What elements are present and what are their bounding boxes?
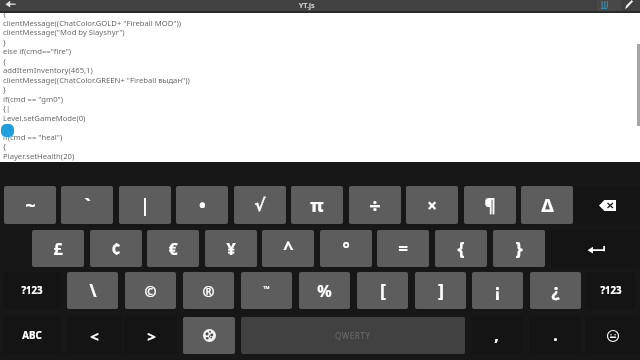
staticText: € xyxy=(168,238,178,260)
button[interactable]: × xyxy=(406,186,458,224)
button[interactable]: Enter xyxy=(551,230,640,267)
button[interactable]: \ xyxy=(67,272,118,309)
staticText: clientMessage((ChatColor.GOLD+ "Fireball… xyxy=(3,18,182,28)
staticText: Level.setGameMode(0) xyxy=(3,113,86,123)
button[interactable]: ~ xyxy=(4,186,56,224)
staticText: {| xyxy=(3,103,11,113)
staticText: ¶ xyxy=(484,194,496,217)
button[interactable]: √ xyxy=(234,186,286,224)
button[interactable]: } xyxy=(493,230,545,267)
staticText: { xyxy=(3,8,6,18)
staticText: < xyxy=(90,326,99,346)
staticText: if(cmd == "heal") xyxy=(3,132,63,142)
staticText: ABC xyxy=(22,329,42,342)
button[interactable]: • xyxy=(176,186,228,224)
button[interactable]: ™ xyxy=(241,272,292,309)
staticText: π xyxy=(310,193,324,218)
button[interactable]: ¶ xyxy=(464,186,516,224)
staticText: clientMessage((ChatColor.GREEN+ "Firebal… xyxy=(3,75,190,85)
button[interactable]: ?123 xyxy=(586,272,635,309)
staticText: ÷ xyxy=(369,192,381,219)
staticText: ^ xyxy=(283,236,294,261)
staticText: ¥ xyxy=(226,238,236,260)
button[interactable]: Backspace xyxy=(574,186,640,224)
staticText: • xyxy=(199,193,206,218)
button[interactable]: © xyxy=(125,272,176,309)
button[interactable]: ?123 xyxy=(3,272,60,309)
button[interactable]: ¢ xyxy=(90,230,142,267)
staticText: ™ xyxy=(263,283,270,294)
staticText: ?123 xyxy=(21,284,43,297)
button[interactable]: Change keyboard xyxy=(183,317,235,354)
button[interactable]: . xyxy=(529,317,581,354)
staticText: { xyxy=(457,236,465,261)
button[interactable]: ¿ xyxy=(530,272,581,309)
button[interactable]: ÷ xyxy=(349,186,401,224)
staticText: ¡ xyxy=(495,279,500,302)
staticText: } xyxy=(3,37,6,47)
staticText: √ xyxy=(254,195,266,215)
staticText: ~ xyxy=(25,193,36,218)
staticText: © xyxy=(144,281,157,301)
button[interactable]: = xyxy=(377,230,429,267)
staticText: = xyxy=(398,237,408,260)
staticText: > xyxy=(147,326,156,346)
staticText: ?123 xyxy=(600,284,622,297)
button[interactable]: ^ xyxy=(262,230,314,267)
staticText: Player.setHealth(20) xyxy=(3,151,75,161)
button[interactable]: % xyxy=(299,272,350,309)
staticText: } xyxy=(515,236,523,261)
staticText: clientMessage("Mod by Slayshyr") xyxy=(3,27,125,37)
staticText: ] xyxy=(438,278,444,303)
button[interactable]: ¡ xyxy=(472,272,523,309)
staticText: } xyxy=(3,84,6,94)
staticText: if(cmd == "gm0") xyxy=(3,94,63,104)
staticText: , xyxy=(494,324,499,346)
button[interactable]: QWERTY xyxy=(241,317,465,354)
button[interactable]: ¥ xyxy=(205,230,257,267)
staticText: ® xyxy=(202,281,215,301)
staticText: Δ xyxy=(541,193,554,218)
button[interactable]: £ xyxy=(32,230,84,267)
button[interactable]: ] xyxy=(415,272,466,309)
button[interactable]: € xyxy=(147,230,199,267)
button[interactable]: Back xyxy=(0,0,26,11)
staticText: ° xyxy=(342,237,350,260)
staticText: { xyxy=(3,56,6,66)
button[interactable]: [ xyxy=(357,272,408,309)
staticText: ¿ xyxy=(551,279,560,302)
button[interactable]: ® xyxy=(183,272,234,309)
button[interactable]: , xyxy=(471,317,522,354)
button[interactable]: < xyxy=(67,317,121,354)
staticText: | xyxy=(140,194,150,217)
staticText: QWERTY xyxy=(335,330,371,341)
button[interactable]: > xyxy=(125,317,178,354)
button[interactable]: | xyxy=(119,186,171,224)
staticText: % xyxy=(317,280,332,302)
button[interactable]: ` xyxy=(61,186,113,224)
staticText: × xyxy=(427,194,437,217)
staticText: } xyxy=(3,122,6,132)
button[interactable]: { xyxy=(435,230,487,267)
button[interactable]: Edit xyxy=(621,0,640,11)
button[interactable]: ABC xyxy=(3,317,61,354)
staticText: [ xyxy=(380,278,386,303)
staticText: else if(cmd=="fire") xyxy=(3,46,72,56)
staticText: \ xyxy=(89,279,97,302)
button[interactable]: π xyxy=(291,186,343,224)
button[interactable]: Δ xyxy=(521,186,573,224)
staticText: ` xyxy=(84,193,91,218)
staticText: £ xyxy=(53,238,63,260)
button[interactable]: Emoji xyxy=(585,317,640,354)
staticText: . xyxy=(553,324,558,346)
staticText: ¢ xyxy=(111,238,121,260)
button[interactable]: ° xyxy=(320,230,372,267)
staticText: { xyxy=(3,141,6,151)
staticText: YT.js xyxy=(299,0,315,10)
button[interactable]: Run script xyxy=(597,0,621,11)
staticText: addItemInventory(465,1) xyxy=(3,65,93,75)
